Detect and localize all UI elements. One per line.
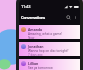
staticText: Lillian (28, 61, 39, 66)
staticText: Conversations (21, 15, 45, 20)
staticText: 11:43 (21, 4, 31, 9)
button[interactable]: More options (73, 15, 78, 20)
staticText: Jonathan (28, 44, 44, 49)
button[interactable]: Search (66, 15, 71, 20)
button[interactable]: Lillian (19, 59, 80, 70)
staticText: Wanna hop on disc tonight? (28, 49, 69, 53)
staticText: See ya tomorrow (28, 66, 53, 70)
staticText: 7 days ago (28, 53, 43, 56)
button[interactable]: Amanda (19, 25, 80, 39)
staticText: Amanda (28, 27, 43, 32)
staticText: Now (28, 36, 35, 39)
staticText: Amazing, what a game! (28, 32, 62, 36)
button[interactable]: Jonathan (19, 42, 80, 56)
